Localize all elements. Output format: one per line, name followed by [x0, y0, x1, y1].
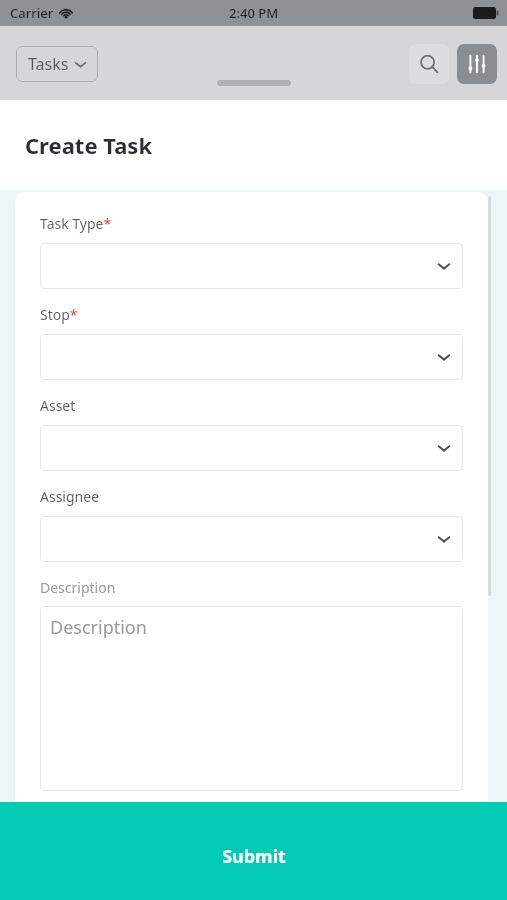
button[interactable]	[40, 334, 463, 380]
button[interactable]	[40, 516, 463, 562]
staticText: Create Task	[25, 130, 153, 160]
button[interactable]: Search	[409, 44, 449, 84]
button[interactable]: Filter	[457, 44, 497, 84]
staticText: Carrier	[10, 4, 54, 22]
button[interactable]	[40, 425, 463, 471]
button[interactable]: Tasks	[16, 46, 98, 82]
staticText: Description	[40, 578, 116, 597]
button[interactable]: Submit	[0, 802, 507, 900]
staticText: Submit	[222, 844, 286, 869]
staticText: Tasks	[28, 53, 69, 75]
staticText: Description	[50, 615, 147, 640]
staticText: Asset	[40, 396, 76, 415]
staticText: Task Type*	[40, 214, 112, 233]
staticText: 2:40 PM	[229, 4, 279, 22]
staticText: Assignee	[40, 487, 100, 506]
staticText: Stop*	[40, 305, 78, 324]
button[interactable]: Description	[40, 606, 463, 791]
button[interactable]	[40, 243, 463, 289]
